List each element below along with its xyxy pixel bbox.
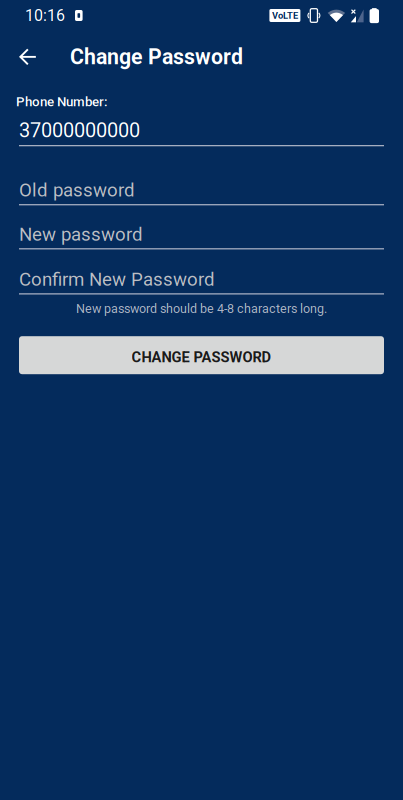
staticText: 37000000000 xyxy=(19,119,140,142)
staticText: Old password xyxy=(19,179,135,201)
staticText: New password should be 4-8 characters lo… xyxy=(76,301,327,316)
staticText: CHANGE PASSWORD xyxy=(131,349,271,366)
staticText: VoLTE xyxy=(272,10,298,21)
button[interactable]: CHANGE PASSWORD xyxy=(19,336,384,374)
staticText: Confirm New Password xyxy=(19,268,215,290)
staticText: Phone Number: xyxy=(16,94,108,110)
staticText: New password xyxy=(19,223,143,245)
staticText: Change Password xyxy=(70,44,243,69)
button[interactable]: Back xyxy=(8,37,48,77)
staticText: 10:16 xyxy=(25,6,65,25)
